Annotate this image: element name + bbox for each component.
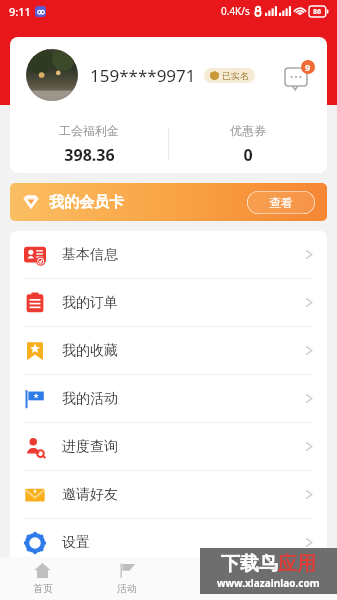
- staticText: 下载鸟: [221, 552, 278, 576]
- button[interactable]: 我的会员卡: [10, 183, 327, 221]
- button[interactable]: [26, 49, 78, 101]
- button[interactable]: Tab: [253, 557, 337, 600]
- staticText: 我的会员卡: [49, 193, 124, 212]
- staticText: 设置: [62, 534, 90, 552]
- button[interactable]: 已实名: [204, 68, 255, 83]
- button[interactable]: 我的活动: [10, 375, 327, 422]
- staticText: 我的活动: [62, 390, 118, 408]
- staticText: 邀请好友: [62, 486, 118, 504]
- staticText: 86: [313, 7, 322, 17]
- button[interactable]: 设置: [10, 519, 327, 566]
- button[interactable]: Tab: [169, 557, 253, 600]
- button[interactable]: 首页: [0, 557, 85, 600]
- staticText: 0: [243, 144, 253, 166]
- staticText: 进度查询: [62, 438, 118, 456]
- button[interactable]: 工会福利金: [10, 123, 168, 166]
- button[interactable]: 活动: [85, 557, 169, 600]
- staticText: 0.4K/s: [221, 4, 250, 18]
- staticText: 我的订单: [62, 294, 118, 312]
- button[interactable]: Messages: [285, 60, 315, 90]
- button[interactable]: 优惠券: [169, 123, 327, 166]
- staticText: 首页: [33, 582, 53, 595]
- button[interactable]: 我的收藏: [10, 327, 327, 374]
- button[interactable]: 我的订单: [10, 279, 327, 326]
- staticText: 已实名: [222, 70, 249, 81]
- staticText: 9: [305, 61, 311, 73]
- button[interactable]: 基本信息: [10, 231, 327, 278]
- staticText: 159****9971: [90, 64, 196, 87]
- staticText: 应用: [278, 552, 316, 576]
- staticText: 工会福利金: [59, 123, 119, 138]
- staticText: 基本信息: [62, 246, 118, 264]
- staticText: 优惠券: [230, 123, 266, 138]
- staticText: 查看: [269, 195, 293, 210]
- button[interactable]: 邀请好友: [10, 471, 327, 518]
- button[interactable]: 查看: [247, 191, 315, 214]
- staticText: 活动: [117, 582, 137, 595]
- staticText: 9:11: [9, 4, 31, 19]
- staticText: www.xlazainlao.com: [217, 576, 320, 590]
- staticText: 我的收藏: [62, 342, 118, 360]
- button[interactable]: 进度查询: [10, 423, 327, 470]
- staticText: 398.36: [64, 144, 115, 166]
